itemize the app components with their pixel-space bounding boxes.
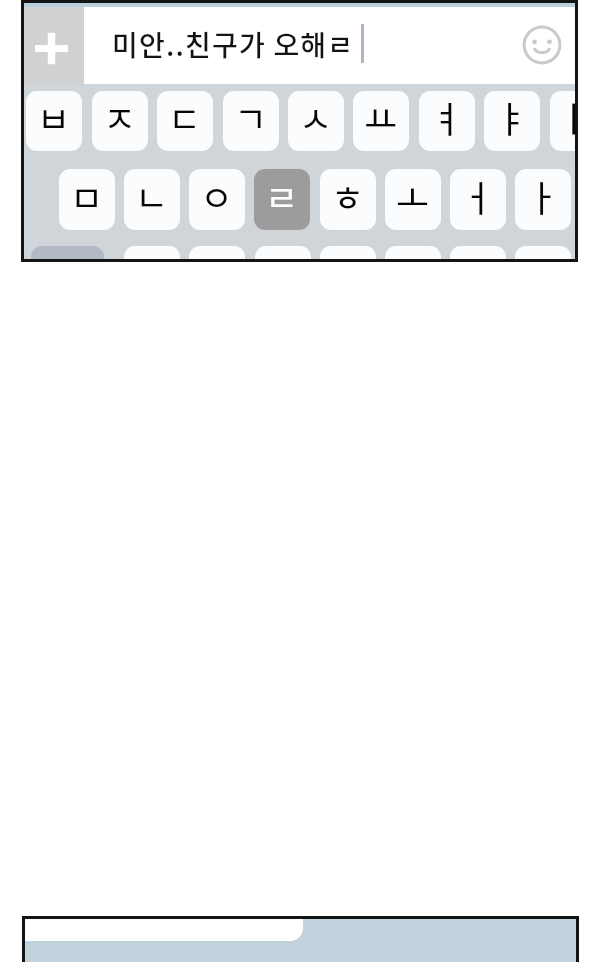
staticText: 미안..친구가 오해ㄹ	[112, 24, 355, 65]
button[interactable]: Add attachment	[24, 7, 84, 84]
button[interactable]: Shift	[31, 246, 104, 259]
button[interactable]: ㅑ	[484, 91, 540, 151]
button[interactable]: ㅈ	[92, 91, 148, 151]
button[interactable]: ㅅ	[288, 91, 344, 151]
staticText: ㄴ	[135, 170, 169, 222]
button[interactable]: ㄹ	[254, 169, 310, 230]
button[interactable]: Emoji	[520, 23, 564, 67]
button[interactable]: ㄴ	[124, 169, 180, 230]
staticText: ㅛ	[364, 91, 398, 143]
staticText: ㅇ	[200, 170, 234, 222]
staticText: ㅑ	[495, 91, 529, 143]
staticText: ㅎ	[331, 170, 365, 222]
button[interactable]	[189, 246, 245, 259]
staticText: ㅐ	[561, 91, 575, 143]
staticText: ㅂ	[37, 91, 71, 143]
button[interactable]: ㄷ	[157, 91, 213, 151]
button[interactable]: ㅇ	[189, 169, 245, 230]
button[interactable]: ㅁ	[59, 169, 115, 230]
button[interactable]	[515, 246, 571, 259]
staticText: ㅅ	[299, 91, 333, 143]
staticText: ㅕ	[430, 91, 464, 143]
button[interactable]: ㅎ	[320, 169, 376, 230]
button[interactable]: ㄱ	[223, 91, 279, 151]
button[interactable]: ㅂ	[26, 91, 82, 151]
staticText: ㅁ	[70, 170, 104, 222]
staticText: ㄷ	[168, 91, 202, 143]
button[interactable]: ㅕ	[419, 91, 475, 151]
staticText: ㅓ	[461, 170, 495, 222]
button[interactable]	[255, 246, 311, 259]
staticText: ㅗ	[396, 170, 430, 222]
staticText: ㅈ	[103, 91, 137, 143]
button[interactable]: ㅛ	[353, 91, 409, 151]
button[interactable]: ㅗ	[385, 169, 441, 230]
button[interactable]	[385, 246, 441, 259]
staticText: ㄹ	[265, 170, 299, 222]
button[interactable]: ㅐ	[550, 91, 575, 151]
button[interactable]	[450, 246, 506, 259]
button[interactable]	[124, 246, 180, 259]
staticText: ㅏ	[526, 170, 560, 222]
button[interactable]	[320, 246, 376, 259]
button[interactable]: ㅓ	[450, 169, 506, 230]
staticText: ㄱ	[234, 91, 268, 143]
button[interactable]: ㅏ	[515, 169, 571, 230]
